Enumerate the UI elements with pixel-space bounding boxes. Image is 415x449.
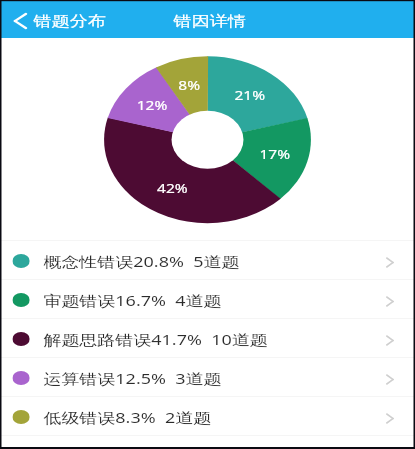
staticText: 低级错误8.3% 2道题 — [43, 407, 212, 427]
staticText: 解题思路错误41.7% 10道题 — [43, 329, 268, 349]
staticText: 审题错误16.7% 4道题 — [43, 290, 222, 310]
button[interactable]: 运算错误12.5% 3道题 — [0, 358, 415, 396]
button[interactable]: 审题错误16.7% 4道题 — [0, 280, 415, 318]
button[interactable]: 低级错误8.3% 2道题 — [0, 397, 415, 435]
other: 查看详情 — [386, 257, 394, 268]
staticText: 错题分布 — [33, 12, 107, 30]
button[interactable]: 解题思路错误41.7% 10道题 — [0, 319, 415, 357]
other: 查看详情 — [386, 413, 394, 424]
other: 返回 — [14, 13, 27, 29]
staticText: 概念性错误20.8% 5道题 — [43, 251, 241, 271]
other: 查看详情 — [386, 296, 394, 307]
button[interactable]: 返回 — [0, 0, 119, 38]
button[interactable]: 概念性错误20.8% 5道题 — [0, 241, 415, 279]
staticText: 错因详情 — [174, 12, 247, 30]
other: 查看详情 — [386, 374, 394, 385]
other: 查看详情 — [386, 335, 394, 346]
staticText: 运算错误12.5% 3道题 — [43, 368, 222, 388]
